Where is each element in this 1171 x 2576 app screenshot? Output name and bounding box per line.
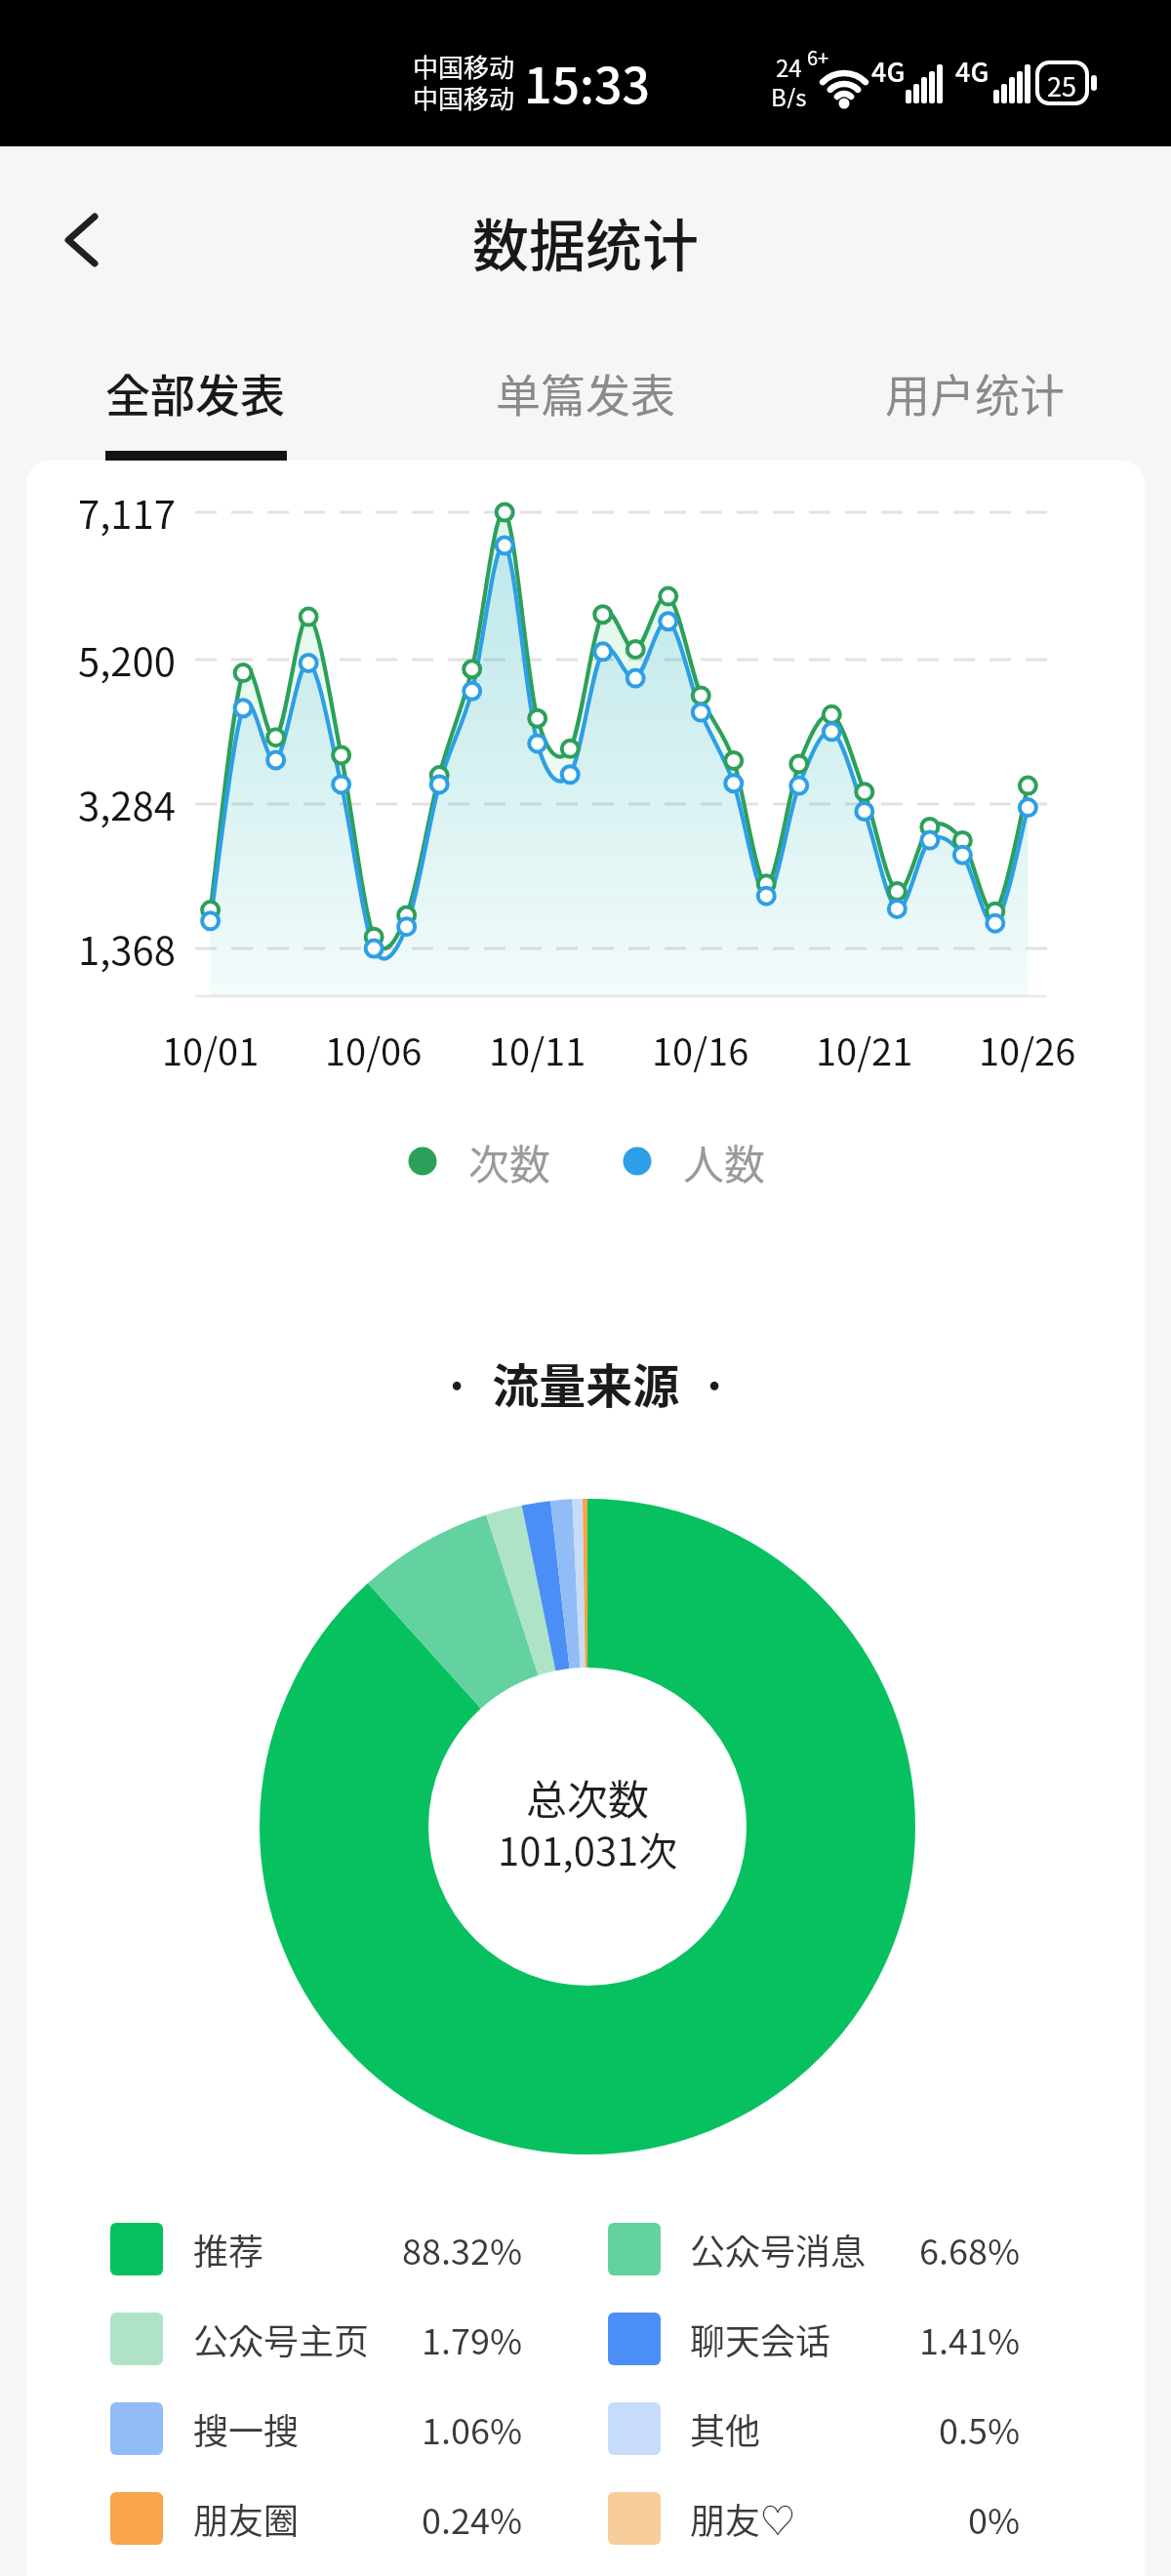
staticText: 人数 (683, 1132, 766, 1190)
staticText: 101,031次 (498, 1821, 678, 1877)
staticText: 10/11 (489, 1023, 586, 1076)
button[interactable]: 用户统计 (819, 348, 1131, 436)
staticText: 公众号主页 (193, 2314, 370, 2364)
staticText: 其他 (690, 2403, 761, 2454)
staticText: 用户统计 (885, 360, 1065, 425)
staticText: 6.68% (919, 2224, 1021, 2274)
staticText: 1.06% (422, 2403, 523, 2454)
staticText: 4G (871, 52, 906, 85)
staticText: 全部发表 (105, 360, 285, 425)
staticText: 朋友圈 (193, 2493, 300, 2544)
staticText: 88.32% (402, 2224, 523, 2274)
button[interactable] (398, 1130, 564, 1192)
staticText: B/s (771, 79, 807, 108)
staticText: 朋友♡ (690, 2493, 796, 2544)
staticText: 总次数 (526, 1767, 650, 1826)
staticText: 15:33 (524, 47, 650, 115)
staticText: 4G (955, 52, 989, 85)
staticText: 10/16 (652, 1023, 749, 1076)
staticText: 1.41% (919, 2314, 1021, 2364)
staticText: 中国移动 (413, 79, 515, 112)
staticText: 搜一搜 (193, 2403, 300, 2454)
staticText: 10/06 (325, 1023, 423, 1076)
staticText: 0% (968, 2493, 1021, 2544)
staticText: 10/26 (979, 1023, 1076, 1076)
staticText: 6+ (807, 43, 829, 70)
staticText: 24 (776, 50, 802, 79)
staticText: 25 (1047, 66, 1076, 100)
staticText: 10/01 (162, 1023, 260, 1076)
staticText: 10/21 (816, 1023, 913, 1076)
staticText: 聊天会话 (690, 2314, 831, 2364)
staticText: 0.24% (422, 2493, 523, 2544)
staticText: 次数 (468, 1132, 551, 1190)
staticText: 1,368 (78, 920, 176, 977)
button[interactable]: 全部发表 (39, 348, 351, 436)
staticText: 5,200 (78, 631, 176, 688)
staticText: 公众号消息 (690, 2224, 867, 2274)
staticText: 7,117 (78, 484, 176, 541)
staticText: · 流量来源 · (443, 1348, 729, 1417)
staticText: 0.5% (939, 2403, 1021, 2454)
staticText: 推荐 (193, 2224, 264, 2274)
button[interactable] (44, 195, 122, 285)
staticText: 数据统计 (472, 201, 700, 279)
staticText: 中国移动 (413, 48, 515, 81)
button[interactable]: 单篇发表 (429, 348, 742, 436)
staticText: 1.79% (422, 2314, 523, 2364)
staticText: 3,284 (78, 776, 176, 832)
button[interactable] (613, 1130, 779, 1192)
staticText: 单篇发表 (496, 360, 675, 425)
